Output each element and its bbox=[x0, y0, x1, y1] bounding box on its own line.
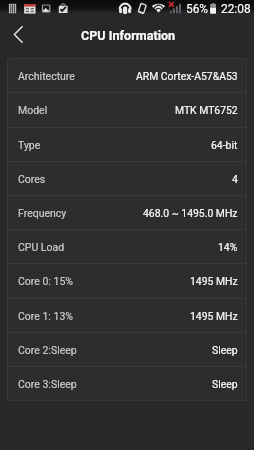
staticText: 4 bbox=[232, 173, 238, 185]
staticText: Core 1: 13% bbox=[18, 310, 73, 322]
staticText: Cores bbox=[18, 173, 46, 185]
button[interactable]: Core 2:Sleep bbox=[7, 333, 247, 366]
staticText: Model bbox=[18, 104, 48, 116]
button[interactable]: Model bbox=[7, 93, 247, 127]
staticText: 64-bit bbox=[211, 139, 238, 151]
staticText: Sleep bbox=[212, 378, 238, 390]
button[interactable]: Architecture bbox=[7, 59, 247, 92]
staticText: 56% bbox=[186, 2, 209, 16]
staticText: 468.0 ~ 1495.0 MHz bbox=[143, 207, 238, 219]
staticText: 14% bbox=[218, 241, 238, 253]
button[interactable]: Core 0: 15% bbox=[7, 264, 247, 298]
button[interactable]: Back bbox=[0, 14, 38, 58]
staticText: 1495 MHz bbox=[190, 275, 238, 287]
staticText: 1495 MHz bbox=[190, 310, 238, 322]
button[interactable]: Type bbox=[7, 128, 247, 161]
button[interactable]: Core 1: 13% bbox=[7, 299, 247, 332]
staticText: Core 2:Sleep bbox=[18, 344, 77, 356]
button[interactable]: Core 3:Sleep bbox=[7, 367, 247, 400]
staticText: Core 0: 15% bbox=[18, 275, 73, 287]
staticText: ARM Cortex-A57&A53 bbox=[136, 70, 238, 82]
staticText: 22:08 bbox=[221, 2, 251, 16]
button[interactable]: Cores bbox=[7, 162, 247, 195]
staticText: MTK MT6752 bbox=[175, 104, 238, 116]
button[interactable]: CPU Load bbox=[7, 230, 247, 263]
staticText: Sleep bbox=[212, 344, 238, 356]
staticText: Architecture bbox=[18, 70, 75, 82]
staticText: Frequency bbox=[18, 207, 67, 219]
button[interactable]: Frequency bbox=[7, 196, 247, 229]
staticText: CPU Load bbox=[18, 241, 65, 253]
staticText: CPU Information bbox=[81, 28, 176, 43]
staticText: Type bbox=[18, 139, 41, 151]
staticText: Core 3:Sleep bbox=[18, 378, 77, 390]
